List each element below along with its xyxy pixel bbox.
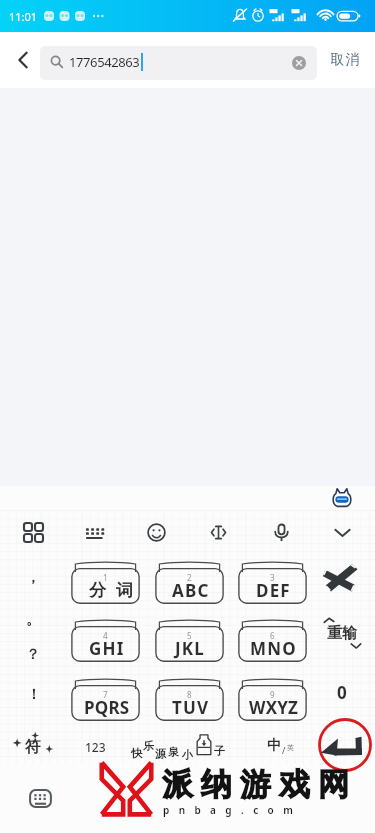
staticText: 4 <box>103 630 108 641</box>
button[interactable]: 4 <box>71 620 140 662</box>
button[interactable]: 中 <box>258 730 306 764</box>
button[interactable]: 8 <box>155 679 224 721</box>
staticText: p n b a g . c o m <box>163 803 297 817</box>
staticText: 分词 <box>84 580 138 601</box>
button[interactable]: ？ <box>15 638 51 672</box>
button[interactable]: 快 <box>128 726 253 766</box>
button[interactable]: Clear text <box>289 53 309 73</box>
button[interactable]: Voice input <box>261 512 301 552</box>
button[interactable]: 5 <box>155 620 224 662</box>
button[interactable]: Back <box>6 32 40 88</box>
staticText: PQRS <box>84 696 130 719</box>
button[interactable]: 取消 <box>322 32 368 88</box>
staticText: DEF <box>256 579 291 602</box>
staticText: 3 <box>270 572 275 583</box>
button[interactable]: 1776542863 <box>40 46 317 80</box>
staticText: 1 <box>103 572 108 583</box>
staticText: 中 <box>267 737 281 755</box>
staticText: 符 <box>25 737 41 757</box>
button[interactable]: Keyboard layouts <box>13 512 53 552</box>
button[interactable]: 3 <box>238 562 307 604</box>
staticText: 0 <box>337 681 347 704</box>
button[interactable]: Text cursor <box>198 512 238 552</box>
button[interactable]: Assistant <box>331 487 353 509</box>
staticText: 英 <box>287 743 294 752</box>
staticText: 泉 <box>168 745 179 759</box>
staticText: 123 <box>85 739 106 755</box>
button[interactable]: ！ <box>16 678 52 712</box>
button[interactable]: 123 <box>73 730 117 764</box>
staticText: 11:01 <box>9 9 38 24</box>
button[interactable]: 9 <box>238 679 307 721</box>
staticText: 重输 <box>327 624 357 643</box>
staticText: 6 <box>270 630 275 641</box>
staticText: 1776542863 <box>69 53 140 71</box>
staticText: 。 <box>26 611 40 629</box>
button[interactable]: 符 <box>11 730 55 764</box>
button[interactable]: 1 <box>71 562 140 604</box>
button[interactable]: Switch keyboard <box>24 782 56 814</box>
staticText: 源 <box>155 747 166 761</box>
button[interactable]: Hide keyboard <box>322 512 362 552</box>
staticText: ABC <box>172 579 210 602</box>
button[interactable]: 0 <box>318 674 366 710</box>
staticText: 8 <box>187 689 192 700</box>
staticText: 小 <box>182 748 193 762</box>
staticText: 快 <box>131 746 142 760</box>
button[interactable]: Delete <box>318 558 364 598</box>
staticText: MNO <box>250 637 297 660</box>
staticText: ？ <box>26 646 40 664</box>
staticText: ！ <box>27 686 41 704</box>
button[interactable]: Enter <box>317 717 373 773</box>
button[interactable]: 7 <box>71 679 140 721</box>
staticText: 5 <box>187 630 192 641</box>
button[interactable]: Emoji <box>136 512 176 552</box>
button[interactable]: 。 <box>15 603 51 637</box>
staticText: ， <box>26 569 40 587</box>
button[interactable]: ， <box>15 561 51 595</box>
button[interactable]: Keyboard <box>75 512 115 552</box>
staticText: 9 <box>270 689 275 700</box>
staticText: 派纳游戏网 <box>158 765 353 804</box>
staticText: / <box>282 744 286 756</box>
staticText: TUV <box>172 696 210 719</box>
staticText: 乐 <box>143 739 154 753</box>
staticText: JKL <box>175 637 206 660</box>
staticText: 子 <box>214 744 225 758</box>
staticText: 取消 <box>330 51 360 69</box>
staticText: GHI <box>89 637 125 660</box>
button[interactable]: 重输 <box>318 617 366 649</box>
button[interactable]: 6 <box>238 620 307 662</box>
staticText: WXYZ <box>249 696 299 719</box>
staticText: 2 <box>187 572 192 583</box>
staticText: 7 <box>103 689 108 700</box>
button[interactable]: 2 <box>155 562 224 604</box>
